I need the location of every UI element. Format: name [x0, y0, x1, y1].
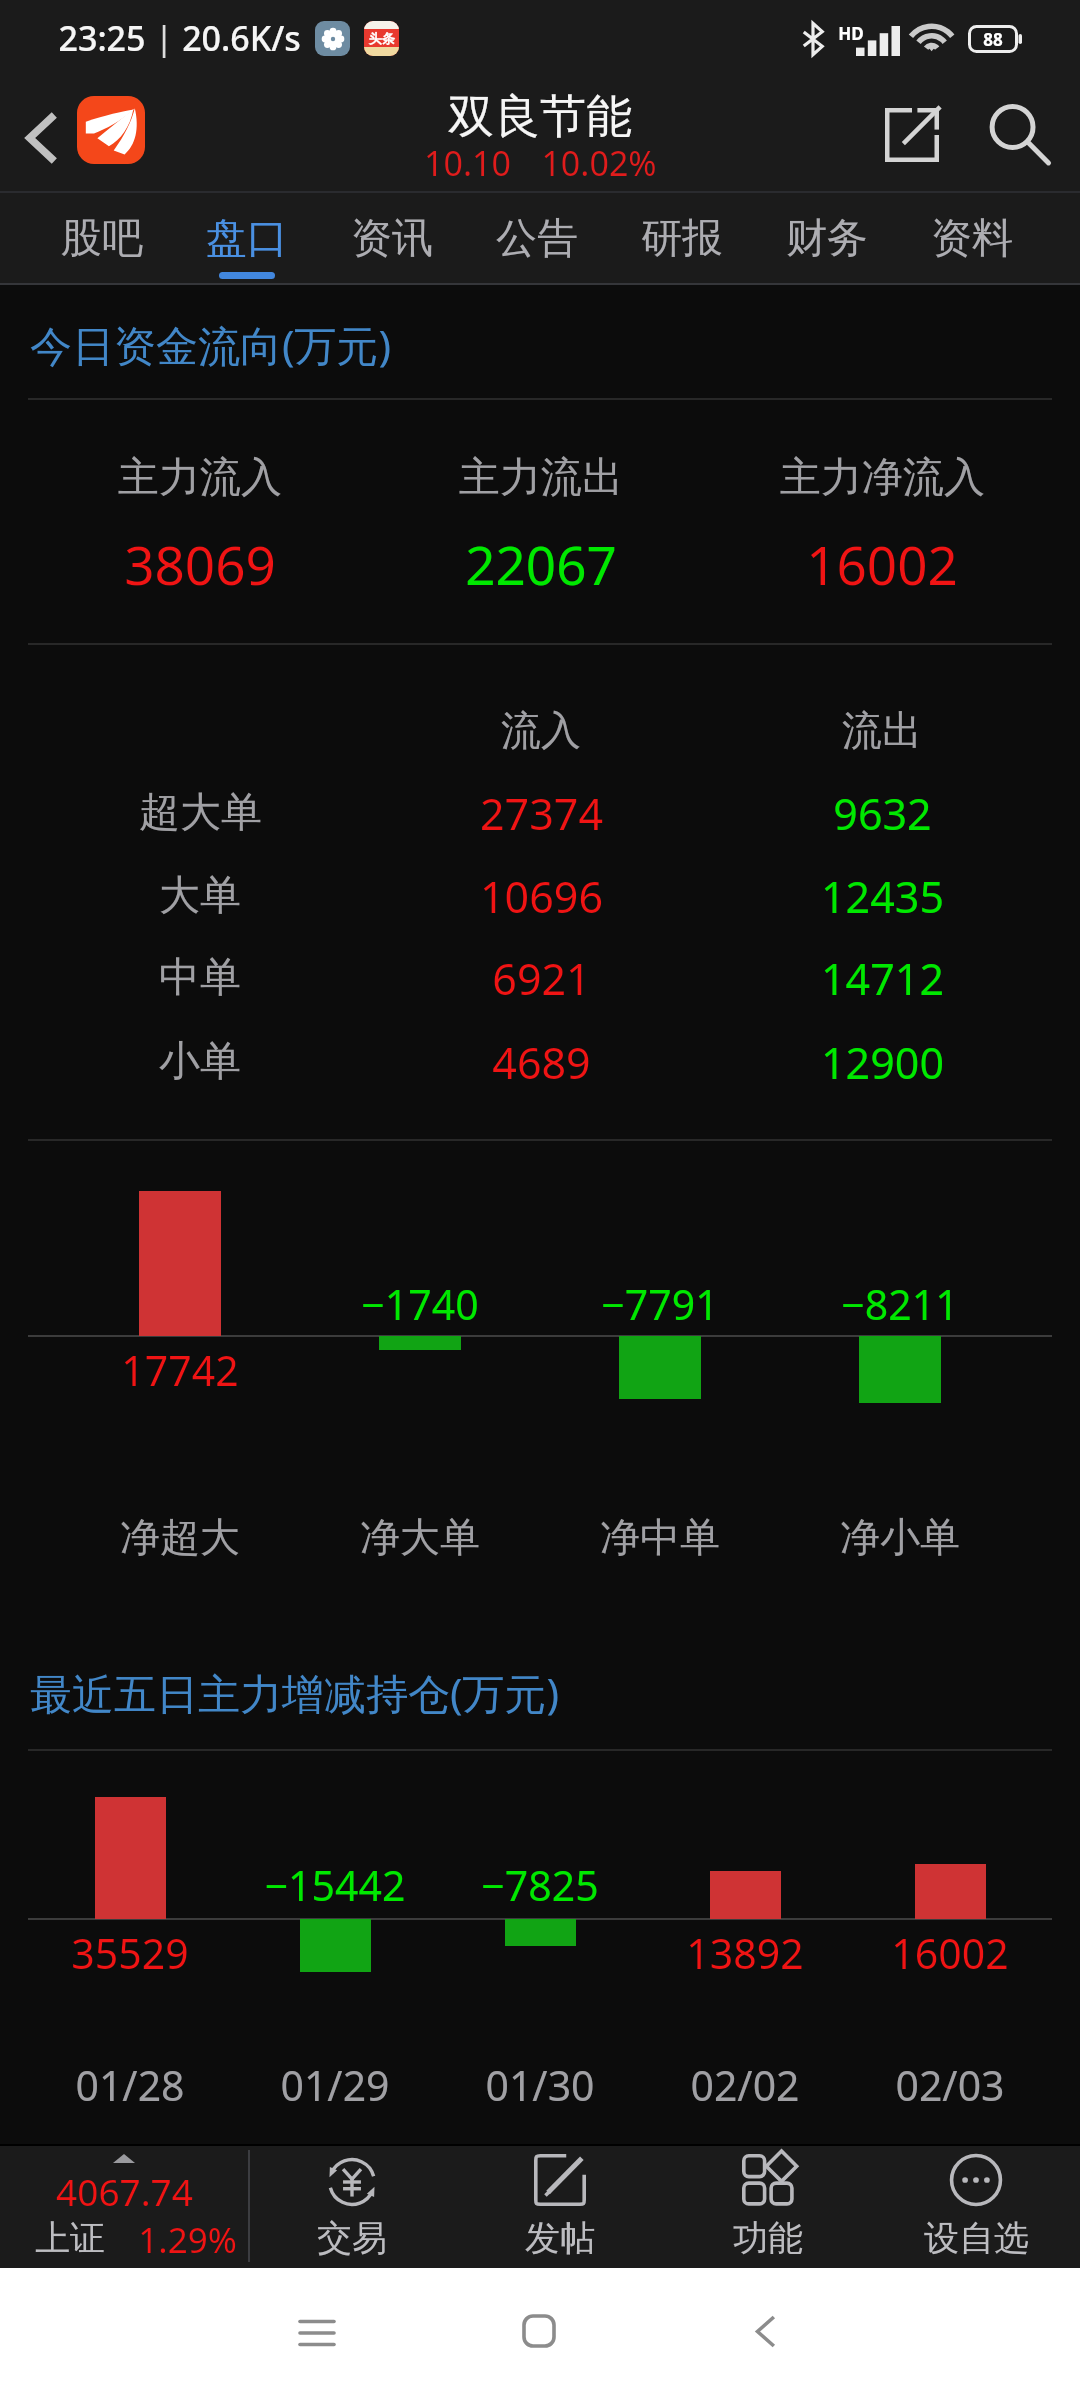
staticText: 10.02%	[541, 140, 657, 184]
staticText: −7825	[430, 1857, 650, 1913]
staticText: 6921	[492, 949, 591, 1008]
staticText: 10.10	[424, 140, 511, 184]
staticText: 大单	[159, 870, 241, 922]
button[interactable]: 公告	[465, 193, 609, 285]
staticText: 双良节能	[448, 88, 632, 146]
staticText: 超大单	[139, 787, 262, 839]
staticText: 23:25	[58, 15, 146, 61]
button[interactable]: Back	[0, 88, 84, 193]
staticText: 20.6K/s	[182, 15, 301, 61]
staticText: 净大单	[310, 1512, 530, 1562]
staticText: 27374	[480, 784, 603, 843]
staticText: 1.29%	[138, 2216, 237, 2260]
staticText: 10696	[480, 867, 603, 926]
staticText: −1740	[310, 1276, 530, 1332]
staticText: −7791	[550, 1276, 770, 1332]
button[interactable]: Share	[858, 82, 966, 187]
staticText: 12900	[821, 1033, 944, 1092]
staticText: 股吧	[61, 213, 143, 263]
staticText: 资料	[931, 213, 1013, 263]
button[interactable]: 设自选	[872, 2144, 1080, 2268]
button[interactable]: 资讯	[320, 193, 464, 285]
staticText: 最近五日主力增减持仓(万元)	[30, 1664, 560, 1721]
staticText: 发帖	[525, 2216, 595, 2260]
staticText: 4689	[492, 1033, 591, 1092]
staticText: 35529	[20, 1925, 240, 1981]
staticText: 02/03	[840, 2057, 1060, 2113]
button[interactable]: 交易	[248, 2144, 456, 2268]
staticText: 14712	[821, 949, 944, 1008]
button[interactable]: 研报	[610, 193, 754, 285]
staticText: 净中单	[550, 1512, 770, 1562]
staticText: 17742	[70, 1342, 290, 1398]
staticText: 上证	[35, 2216, 105, 2260]
staticText: HD	[838, 22, 864, 45]
staticText: 财务	[786, 213, 868, 263]
staticText: 净小单	[790, 1512, 1010, 1562]
button[interactable]: Search	[966, 82, 1074, 187]
staticText: 头条	[369, 30, 395, 46]
button[interactable]: Eastmoney	[77, 96, 145, 164]
staticText: 流入	[501, 705, 581, 755]
staticText: 主力流入	[118, 452, 282, 504]
staticText: 16002	[806, 528, 958, 588]
staticText: −8211	[790, 1276, 1010, 1332]
button[interactable]: 发帖	[456, 2144, 664, 2268]
button[interactable]: 资料	[900, 193, 1044, 285]
button[interactable]: 盘口	[175, 193, 319, 285]
staticText: 净超大	[70, 1512, 290, 1562]
staticText: 88	[983, 28, 1003, 51]
staticText: |	[155, 16, 173, 60]
staticText: 9632	[833, 784, 932, 843]
staticText: −15442	[225, 1857, 445, 1913]
button[interactable]: Recent apps	[267, 2281, 367, 2381]
staticText: 4067.74	[56, 2166, 193, 2210]
staticText: 16002	[840, 1925, 1060, 1981]
staticText: 交易	[317, 2216, 387, 2260]
staticText: 13892	[635, 1925, 855, 1981]
button[interactable]: 财务	[755, 193, 899, 285]
staticText: 01/29	[225, 2057, 445, 2113]
staticText: 设自选	[924, 2216, 1029, 2260]
staticText: 今日资金流向(万元)	[30, 316, 392, 373]
staticText: 功能	[733, 2216, 803, 2260]
staticText: 小单	[159, 1036, 241, 1088]
button[interactable]: 功能	[664, 2144, 872, 2268]
button[interactable]: 4067.74	[0, 2144, 248, 2268]
button[interactable]: 股吧	[30, 193, 174, 285]
button[interactable]: Back	[715, 2281, 815, 2381]
staticText: 主力流出	[459, 452, 623, 504]
staticText: 研报	[641, 213, 723, 263]
button[interactable]: Home	[489, 2281, 589, 2381]
staticText: 主力净流入	[780, 452, 985, 504]
staticText: 02/02	[635, 2057, 855, 2113]
staticText: 12435	[821, 867, 944, 926]
staticText: 公告	[496, 213, 578, 263]
staticText: 01/30	[430, 2057, 650, 2113]
staticText: 中单	[159, 952, 241, 1004]
staticText: 38069	[124, 528, 276, 588]
staticText: 盘口	[206, 213, 288, 263]
staticText: 流出	[842, 705, 922, 755]
staticText: 资讯	[351, 213, 433, 263]
staticText: 22067	[465, 528, 617, 588]
staticText: 01/28	[20, 2057, 240, 2113]
